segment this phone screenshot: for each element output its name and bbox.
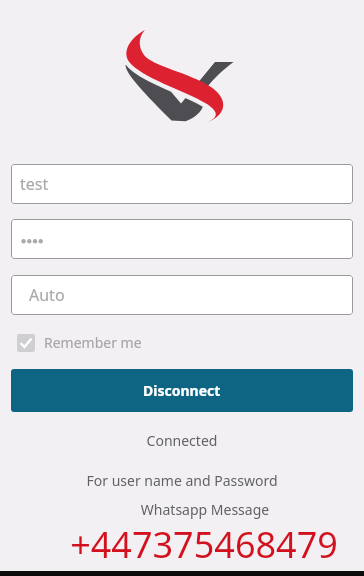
staticText: Remember me [44,333,142,352]
staticText: Whatsapp Message [23,500,364,519]
staticText: Connected [0,431,364,450]
staticText: For user name and Password [0,471,364,490]
button[interactable]: test [11,164,353,204]
button[interactable]: Auto [11,275,353,315]
staticText: test [20,173,49,195]
staticText: Disconnect [143,381,221,400]
staticText: +447375468479 [22,520,364,569]
button[interactable]: Remember me [17,333,142,352]
button[interactable] [11,219,353,259]
button[interactable]: Disconnect [11,369,353,412]
staticText: Auto [29,284,65,306]
other: App logo [128,29,234,123]
